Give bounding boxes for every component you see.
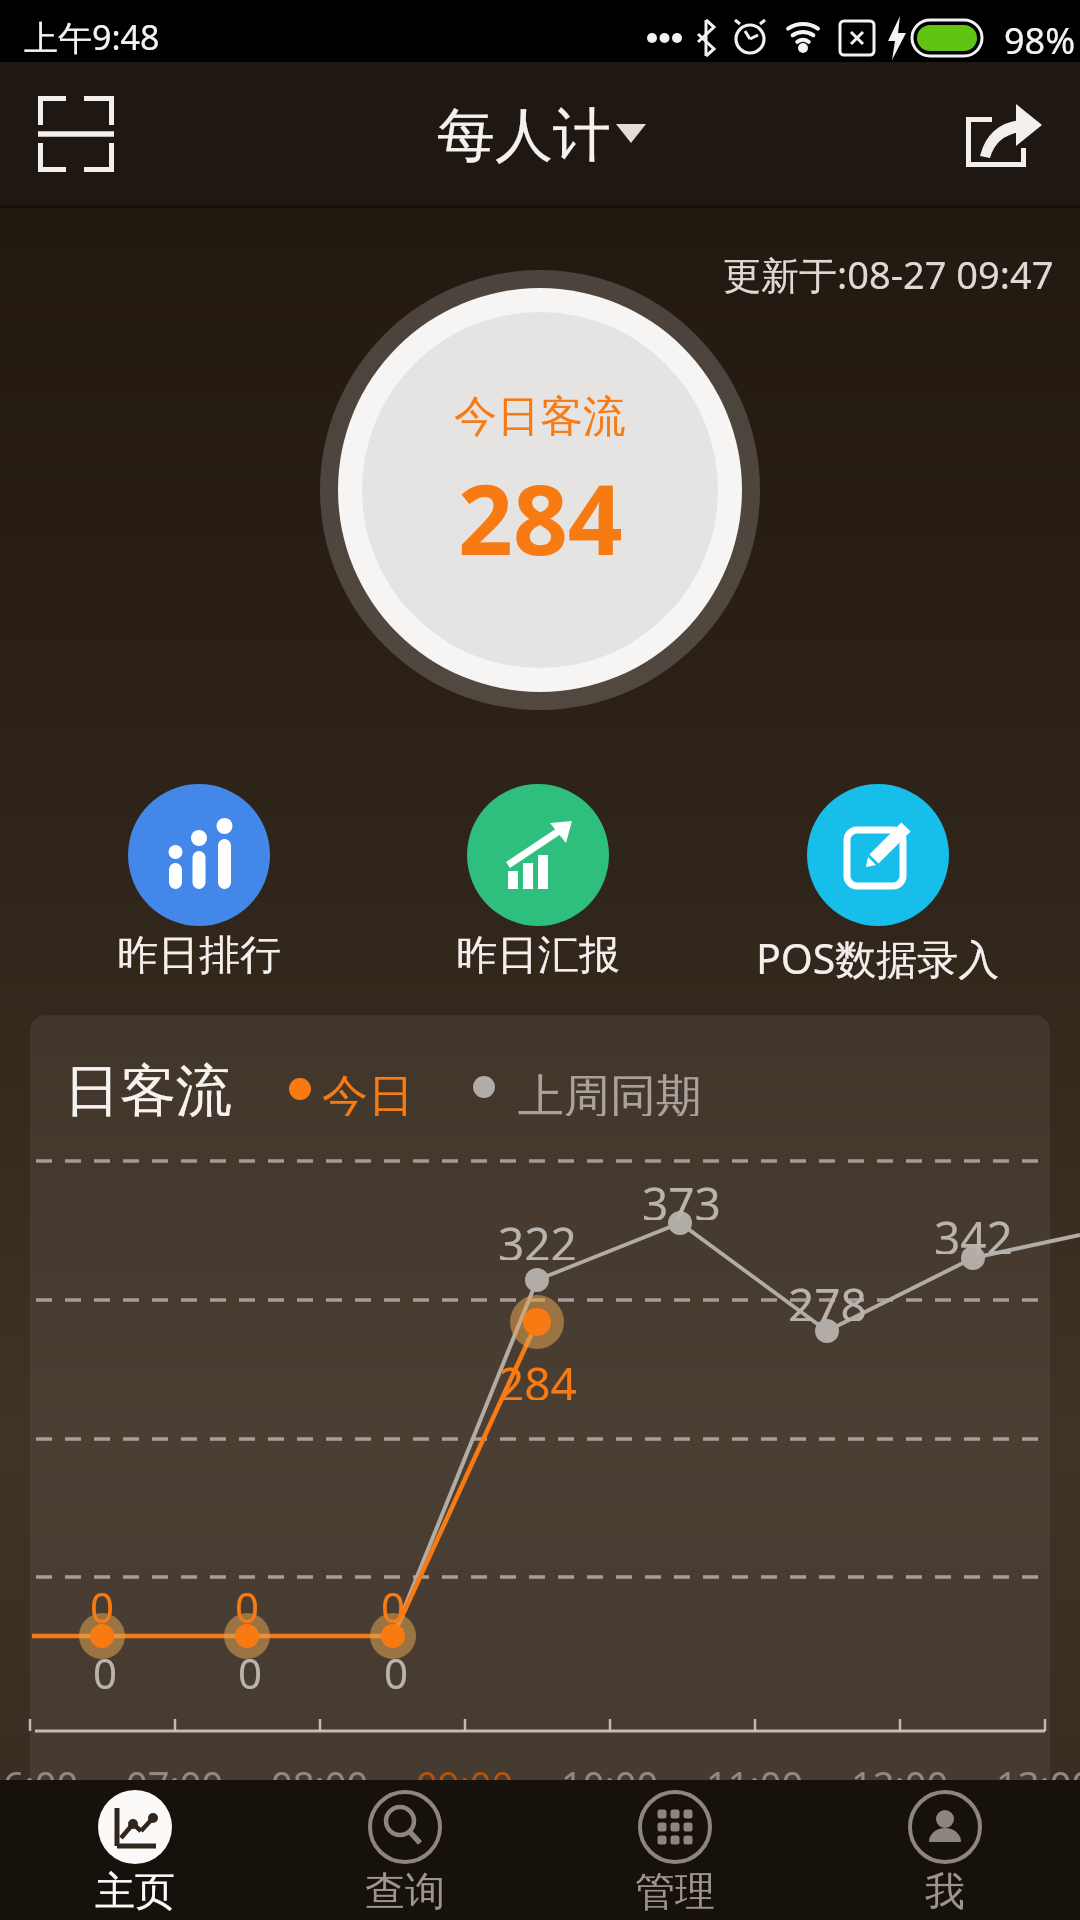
staticText: 10:00 [561, 1758, 659, 1802]
staticText: 昨日汇报 [456, 930, 620, 980]
button[interactable] [320, 270, 760, 710]
button[interactable] [865, 1780, 1025, 1920]
staticText: 我 [925, 1866, 965, 1916]
staticText: 昨日排行 [117, 930, 281, 980]
staticText: 98% [1004, 16, 1076, 58]
button[interactable] [950, 88, 1060, 184]
staticText: 主页 [95, 1866, 175, 1916]
staticText: 0 [384, 1644, 409, 1692]
button[interactable] [128, 784, 270, 926]
button[interactable]: 每人计 [420, 95, 660, 175]
staticText: 278 [788, 1273, 867, 1321]
button[interactable] [467, 784, 609, 926]
staticText: 11:00 [706, 1758, 804, 1802]
button[interactable] [26, 84, 126, 184]
staticText: 284 [498, 1352, 577, 1400]
staticText: 0 [235, 1578, 260, 1626]
staticText: 284 [458, 452, 623, 570]
staticText: 0 [238, 1644, 263, 1692]
staticText: 0 [381, 1578, 406, 1626]
staticText: 更新于:08-27 09:47 [723, 248, 1054, 294]
staticText: 每人计 [437, 99, 611, 172]
staticText: 322 [498, 1212, 577, 1260]
button[interactable] [595, 1780, 755, 1920]
staticText: 今日客流 [454, 390, 626, 442]
button[interactable] [55, 1780, 215, 1920]
staticText: 06:00 [0, 1758, 79, 1802]
staticText: 342 [934, 1206, 1013, 1254]
staticText: 09:00 [416, 1758, 514, 1802]
staticText: 13:00 [996, 1758, 1080, 1802]
button[interactable] [325, 1780, 485, 1920]
staticText: 日客流 [64, 1056, 232, 1120]
staticText: 08:00 [271, 1758, 369, 1802]
button[interactable]: 上周同期 [505, 1068, 715, 1116]
staticText: 今日 [322, 1068, 414, 1116]
staticText: 12:00 [851, 1758, 949, 1802]
staticText: 上周同期 [518, 1068, 702, 1116]
staticText: 管理 [635, 1866, 715, 1916]
staticText: 373 [642, 1172, 721, 1220]
staticText: 查询 [365, 1866, 445, 1916]
staticText: 上午9:48 [24, 14, 160, 58]
staticText: POS数据录入 [756, 930, 1000, 980]
button[interactable] [807, 784, 949, 926]
staticText: 07:00 [126, 1758, 224, 1802]
staticText: 0 [90, 1578, 115, 1626]
staticText: 0 [93, 1644, 118, 1692]
button[interactable]: 今日 [322, 1068, 414, 1116]
